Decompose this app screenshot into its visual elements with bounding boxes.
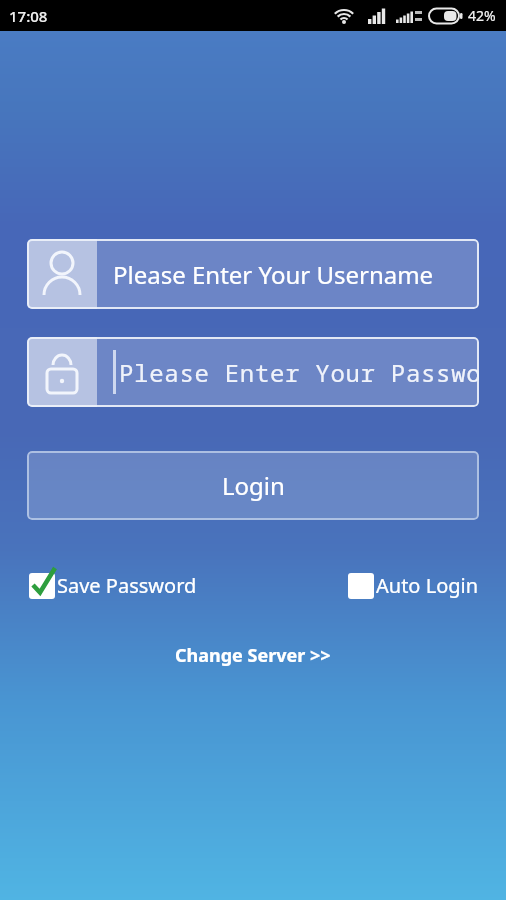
staticText: Please Enter Your Username (113, 258, 434, 291)
staticText: Save Password (57, 572, 197, 599)
staticText: Please Enter Your Password (119, 356, 479, 389)
button[interactable]: Save Password (29, 572, 197, 599)
button[interactable]: Please Enter Your Username (27, 239, 479, 309)
button[interactable]: Please Enter Your Password (27, 337, 479, 407)
staticText: Login (222, 469, 285, 502)
button[interactable]: Auto Login (348, 572, 479, 599)
staticText: Auto Login (376, 572, 479, 599)
staticText: 42% (468, 6, 496, 25)
staticText: 17:08 (9, 6, 48, 26)
button[interactable]: Change Server >> (175, 643, 331, 668)
button[interactable]: Login (27, 451, 479, 520)
